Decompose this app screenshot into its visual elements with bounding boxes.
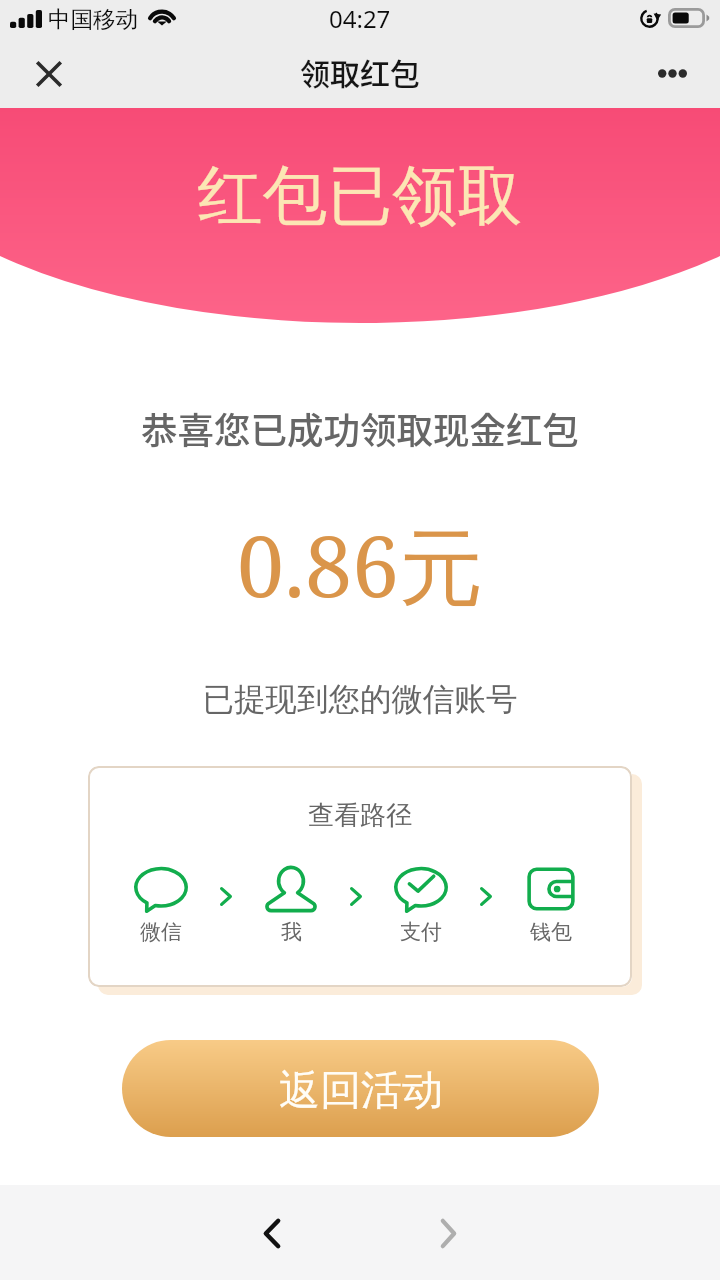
button[interactable]: 我 — [257, 865, 325, 949]
button[interactable]: 返回活动 — [122, 1040, 599, 1137]
staticText: 恭喜您已成功领取现金红包 — [0, 402, 720, 455]
button[interactable]: Close — [23, 50, 75, 102]
staticText: 0.86元 — [0, 507, 720, 622]
button[interactable]: More options — [644, 48, 700, 104]
button[interactable]: 微信 — [127, 865, 195, 949]
staticText: 我 — [281, 919, 302, 945]
staticText: 返回活动 — [279, 1065, 443, 1117]
button[interactable]: Back — [242, 1203, 302, 1263]
staticText: 领取红包 — [300, 50, 420, 93]
button[interactable]: 支付 — [387, 865, 455, 949]
button[interactable]: Forward — [418, 1203, 478, 1263]
staticText: 微信 — [140, 919, 182, 945]
staticText: 红包已领取 — [0, 155, 720, 237]
staticText: 支付 — [400, 919, 442, 945]
button[interactable]: 钱包 — [517, 865, 585, 949]
staticText: 查看路径 — [88, 799, 632, 832]
staticText: 04:27 — [329, 2, 391, 35]
staticText: 中国移动 — [48, 5, 138, 33]
staticText: 钱包 — [530, 919, 572, 945]
staticText: 已提现到您的微信账号 — [0, 680, 720, 720]
